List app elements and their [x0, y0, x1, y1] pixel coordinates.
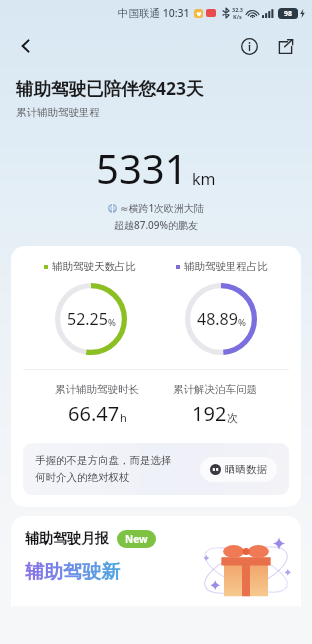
staticText: 晒晒数据	[225, 463, 267, 476]
staticText: 98	[284, 9, 293, 19]
staticText: 52.25	[67, 308, 108, 330]
staticText: 辅助驾驶月报	[25, 530, 109, 548]
staticText: 32.3	[232, 6, 243, 13]
staticText: 辅助驾驶里程占比	[184, 260, 268, 273]
staticText: %	[238, 316, 246, 329]
staticText: ≈横跨1次欧洲大陆	[120, 201, 205, 215]
staticText: 辅助驾驶天数占比	[52, 260, 136, 273]
staticText: 辅助驾驶新	[25, 560, 120, 584]
staticText: 66.47	[68, 400, 120, 427]
staticText: 48.89	[197, 308, 238, 330]
staticText: 手握的不是方向盘，而是选择	[35, 454, 172, 467]
staticText: K/s	[233, 13, 242, 20]
button[interactable]: 晒晒数据	[200, 457, 277, 482]
staticText: 超越87.09%的鹏友	[16, 218, 296, 232]
button[interactable]: Info	[232, 29, 266, 63]
staticText: h	[120, 410, 127, 425]
staticText: 辅助驾驶已陪伴您423天	[16, 76, 204, 100]
button[interactable]: Share	[268, 29, 302, 63]
staticText: km	[192, 168, 216, 190]
staticText: 192	[192, 400, 227, 427]
staticText: 中国联通 10:31	[118, 6, 190, 20]
staticText: 累计辅助驾驶时长	[55, 383, 139, 396]
staticText: 次	[227, 411, 238, 425]
staticText: 何时介入的绝对权杖	[35, 471, 130, 484]
staticText: %	[108, 316, 116, 329]
staticText: 累计辅助驾驶里程	[16, 106, 100, 119]
staticText: 5331	[96, 141, 188, 195]
staticText: New	[125, 532, 148, 546]
button[interactable]: 辅助驾驶月报	[11, 516, 301, 606]
button[interactable]: Back	[8, 28, 44, 64]
staticText: 累计解决泊车问题	[173, 383, 257, 396]
